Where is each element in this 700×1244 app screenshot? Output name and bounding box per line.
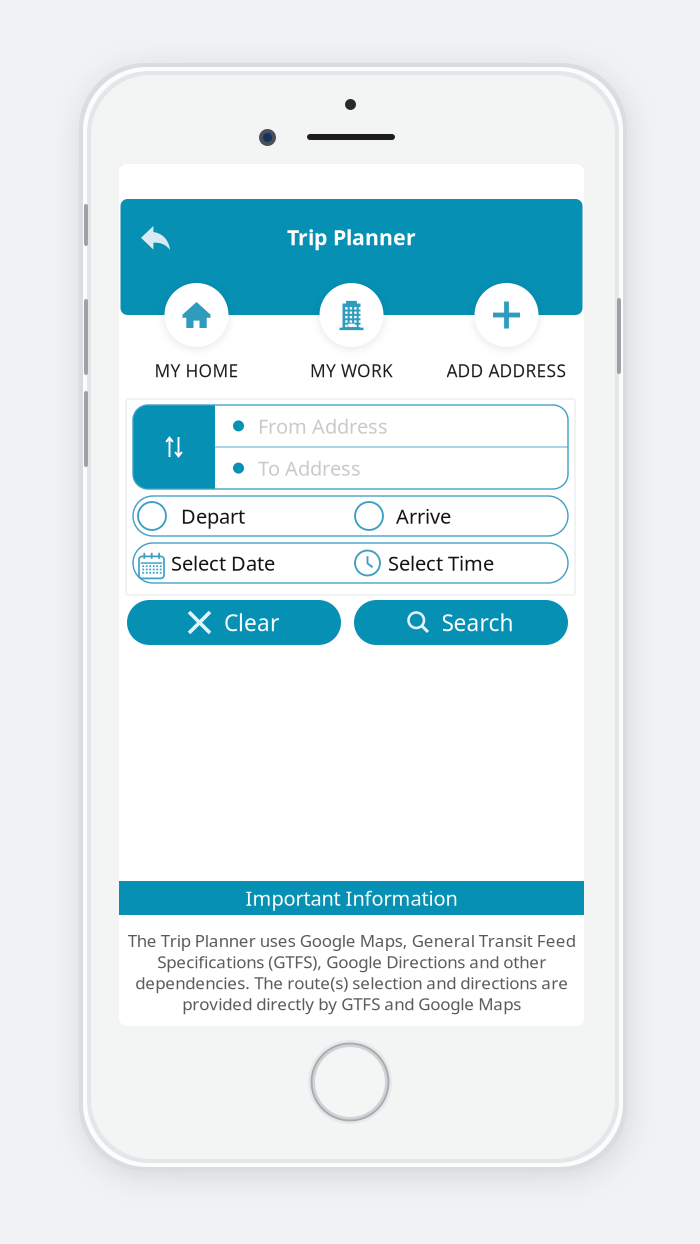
staticText: Important Information <box>245 885 457 911</box>
button[interactable]: Clear <box>127 600 341 645</box>
staticText: Search <box>441 607 513 637</box>
staticText: Clear <box>224 607 279 637</box>
staticText: The Trip Planner uses Google Maps, Gener… <box>127 929 575 1015</box>
button[interactable]: Depart <box>133 496 355 536</box>
staticText: Trip Planner <box>287 223 416 251</box>
button[interactable]: From Address <box>215 405 568 446</box>
staticText: To Address <box>258 455 361 481</box>
button[interactable]: Search <box>354 600 568 645</box>
button[interactable]: Swap from and to addresses <box>133 405 215 489</box>
button[interactable]: Select Time <box>355 543 568 583</box>
staticText: ADD ADDRESS <box>446 359 566 382</box>
staticText: Select Time <box>388 550 494 576</box>
button[interactable]: MY WORK <box>274 283 429 382</box>
staticText: Depart <box>181 503 245 529</box>
staticText: Select Date <box>171 550 275 576</box>
button[interactable]: Arrive <box>355 496 568 536</box>
button[interactable]: Back <box>127 215 185 261</box>
staticText: From Address <box>258 413 388 439</box>
button[interactable]: Select Date <box>133 543 355 583</box>
button[interactable]: To Address <box>215 448 568 489</box>
staticText: Arrive <box>396 503 451 529</box>
button[interactable]: ADD ADDRESS <box>429 283 584 382</box>
staticText: MY WORK <box>310 359 393 382</box>
staticText: MY HOME <box>154 359 238 382</box>
button[interactable]: MY HOME <box>119 283 274 382</box>
